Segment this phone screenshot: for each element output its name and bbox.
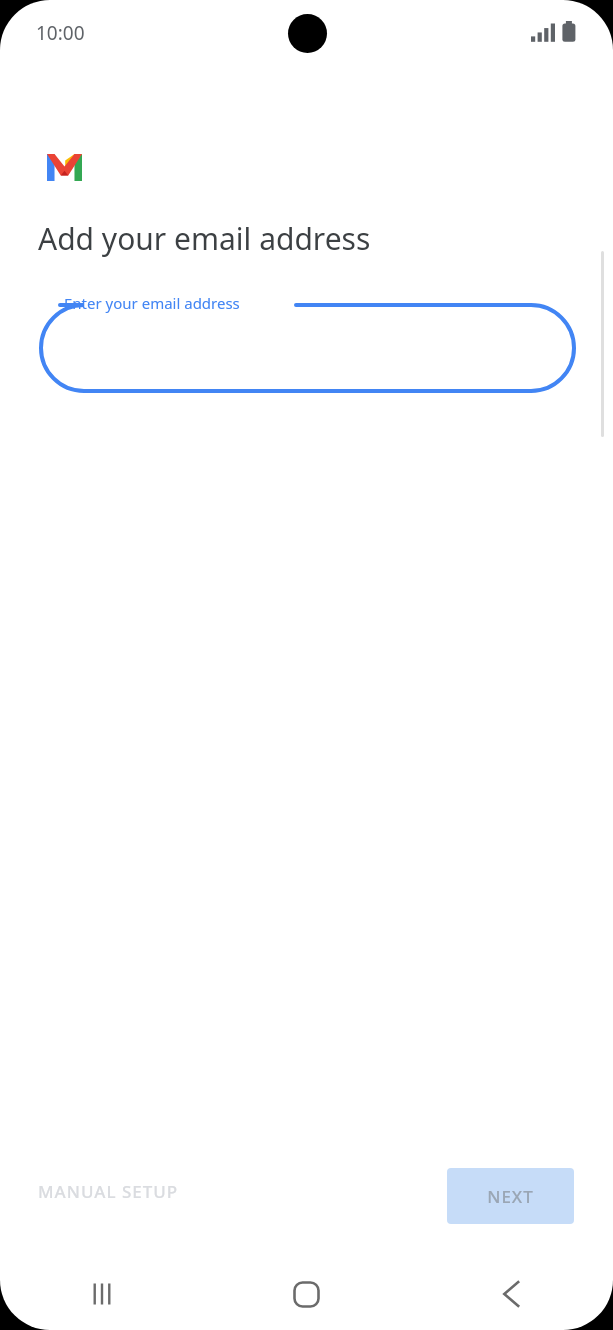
staticText: MANUAL SETUP xyxy=(38,1180,179,1203)
staticText: NEXT xyxy=(487,1185,534,1208)
button[interactable]: MANUAL SETUP xyxy=(24,1170,193,1213)
staticText: Add your email address xyxy=(38,218,371,259)
button[interactable]: Home xyxy=(204,1258,409,1330)
button[interactable]: Recent apps xyxy=(0,1258,204,1330)
staticText: 10:00 xyxy=(36,20,85,46)
button[interactable]: Back xyxy=(409,1258,613,1330)
button[interactable]: Enter your email address xyxy=(0,286,613,391)
button[interactable]: NEXT xyxy=(447,1168,574,1224)
staticText: Enter your email address xyxy=(64,293,240,313)
